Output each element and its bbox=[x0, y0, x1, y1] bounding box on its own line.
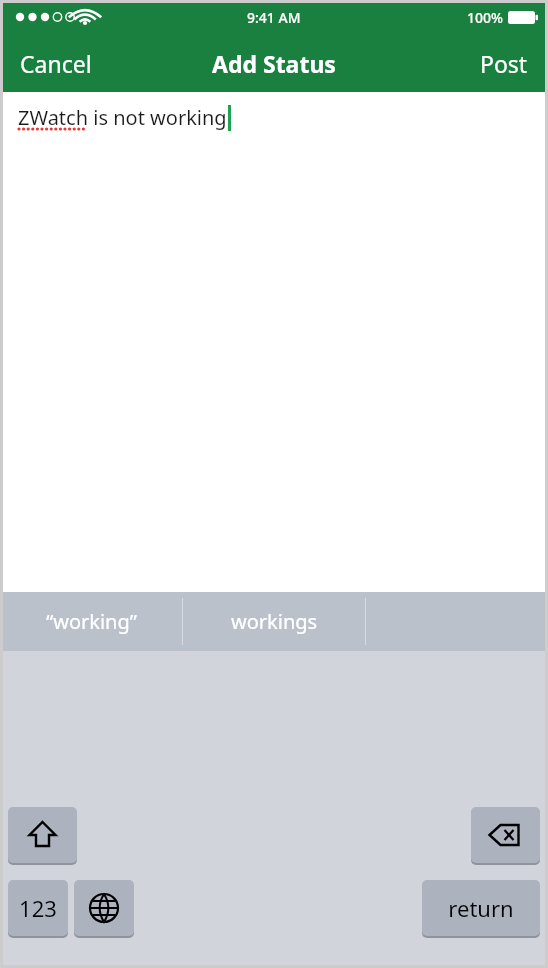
button[interactable]: Shift bbox=[8, 807, 77, 865]
button[interactable]: 123 bbox=[8, 880, 68, 938]
button[interactable]: Post bbox=[460, 34, 548, 92]
button[interactable]: ZWatch is not working bbox=[0, 92, 548, 592]
button[interactable]: “working” bbox=[0, 592, 182, 651]
staticText: ZWatch is not working bbox=[18, 104, 227, 131]
button[interactable]: return bbox=[422, 880, 540, 938]
staticText: workings bbox=[231, 608, 318, 635]
button[interactable]: workings bbox=[183, 592, 365, 651]
button[interactable]: Cancel bbox=[0, 34, 112, 92]
staticText: Cancel bbox=[20, 48, 92, 79]
staticText: Add Status bbox=[212, 48, 336, 79]
staticText: 123 bbox=[19, 893, 57, 923]
staticText: 100% bbox=[467, 8, 503, 27]
button[interactable]: Delete bbox=[471, 807, 540, 865]
staticText: “working” bbox=[46, 608, 137, 635]
staticText: Post bbox=[480, 48, 528, 79]
staticText: return bbox=[448, 893, 514, 923]
staticText: 9:41 AM bbox=[247, 8, 301, 27]
button[interactable]: Switch keyboard language bbox=[74, 880, 134, 938]
